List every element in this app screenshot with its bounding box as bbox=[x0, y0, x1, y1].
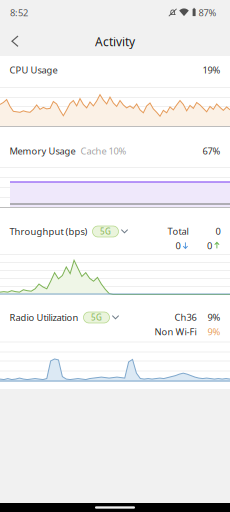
staticText: 0 bbox=[175, 239, 180, 252]
staticText: 0 bbox=[207, 239, 212, 252]
staticText: Activity bbox=[95, 33, 135, 49]
staticText: 8:52 bbox=[10, 6, 28, 19]
staticText: Throughput (bps) bbox=[9, 225, 87, 238]
button[interactable]: 5G bbox=[78, 311, 119, 324]
button[interactable]: 5G bbox=[87, 225, 128, 238]
staticText: 5G bbox=[100, 226, 111, 237]
staticText: Cache 10% bbox=[80, 145, 126, 157]
staticText: 5G bbox=[91, 312, 102, 323]
staticText: Radio Utilization bbox=[9, 311, 78, 324]
staticText: 9% bbox=[207, 311, 220, 323]
staticText: 19% bbox=[202, 64, 220, 76]
staticText: 0 bbox=[215, 225, 220, 237]
button[interactable]: Back bbox=[6, 30, 25, 53]
staticText: Total bbox=[167, 225, 188, 237]
staticText: 9% bbox=[207, 325, 220, 338]
staticText: Ch36 bbox=[174, 311, 196, 323]
staticText: 87% bbox=[198, 6, 216, 19]
staticText: Memory Usage bbox=[9, 145, 75, 157]
staticText: 67% bbox=[202, 145, 220, 157]
staticText: Non Wi-Fi bbox=[154, 325, 196, 338]
staticText: CPU Usage bbox=[9, 64, 57, 76]
